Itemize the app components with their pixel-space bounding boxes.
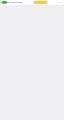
staticText: ••• (59, 1, 62, 3)
staticText: Доставка за 15 мин (7, 1, 22, 3)
